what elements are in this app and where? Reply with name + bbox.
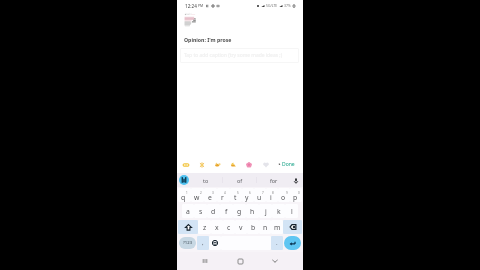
button[interactable]: Hide keyboard <box>268 254 282 268</box>
staticText: 1 <box>186 191 188 195</box>
button[interactable]: a <box>182 204 194 218</box>
button[interactable]: Gif <box>213 156 223 173</box>
staticText: l <box>291 207 293 216</box>
staticText: c <box>227 223 231 232</box>
button[interactable]: o <box>278 188 290 202</box>
button[interactable]: Sticker <box>181 156 191 173</box>
staticText: m <box>274 223 281 232</box>
staticText: k <box>277 207 281 216</box>
button[interactable]: q <box>178 188 191 202</box>
staticText: 12:24 <box>185 3 197 9</box>
button[interactable]: Emoji <box>228 156 238 173</box>
staticText: s <box>199 207 203 216</box>
staticText: z <box>203 223 207 232</box>
button[interactable]: h <box>246 204 259 218</box>
staticText: b <box>251 223 256 232</box>
button[interactable]: Recents <box>198 254 212 268</box>
button[interactable]: t <box>230 188 242 202</box>
staticText: , <box>202 239 204 247</box>
staticText: a <box>186 207 190 216</box>
button[interactable]: d <box>207 204 220 218</box>
button[interactable]: r <box>217 188 230 202</box>
staticText: j <box>265 207 267 216</box>
staticText: 37% <box>284 3 291 8</box>
staticText: 8 <box>272 191 274 195</box>
staticText: to <box>203 177 209 184</box>
button[interactable]: w <box>191 188 204 202</box>
button[interactable]: y <box>242 188 254 202</box>
button[interactable]: Shift <box>178 220 198 234</box>
staticText: 4 <box>224 191 226 195</box>
staticText: x <box>215 223 219 232</box>
staticText: 2 <box>200 191 202 195</box>
staticText: d <box>211 207 216 216</box>
button[interactable]: m <box>271 220 283 234</box>
button[interactable]: Voice input <box>290 175 301 186</box>
button[interactable]: i <box>266 188 278 202</box>
button[interactable]: Enter <box>284 236 301 250</box>
staticText: Done <box>282 161 295 168</box>
button[interactable]: Home <box>233 254 247 268</box>
staticText: PM <box>198 3 204 8</box>
staticText: ?123 <box>183 240 193 246</box>
staticText: Tap to add caption (try some made ideas … <box>184 52 283 59</box>
staticText: q <box>181 193 186 202</box>
button[interactable]: b <box>247 220 259 234</box>
staticText: 6 <box>249 191 251 195</box>
button[interactable]: Comma <box>197 236 209 250</box>
staticText: for <box>270 177 278 184</box>
button[interactable]: Backspace <box>283 220 302 234</box>
button[interactable]: l <box>285 204 298 218</box>
staticText: o <box>281 193 286 202</box>
button[interactable]: ?123 <box>179 237 196 249</box>
button[interactable]: Tap to add caption (try some made ideas … <box>180 48 299 63</box>
button[interactable]: v <box>235 220 247 234</box>
staticText: y <box>245 193 249 202</box>
staticText: 5 <box>237 191 239 195</box>
button[interactable]: Period <box>271 236 283 250</box>
staticText: t <box>234 193 237 202</box>
staticText: p <box>293 193 298 202</box>
button[interactable]: of <box>223 173 256 187</box>
staticText: e <box>208 193 212 202</box>
button[interactable]: k <box>272 204 285 218</box>
staticText: u <box>257 193 262 202</box>
staticText: . <box>276 239 278 247</box>
staticText: f <box>225 207 228 216</box>
staticText: r <box>221 193 224 202</box>
staticText: n <box>263 223 268 232</box>
button[interactable]: Flower <box>244 156 254 173</box>
staticText: 9 <box>286 191 288 195</box>
staticText: 5G/LTE <box>266 3 278 8</box>
button[interactable]: Emoji <box>209 236 221 250</box>
button[interactable]: z <box>198 220 211 234</box>
button[interactable]: Heart <box>261 156 271 173</box>
staticText: of <box>237 177 243 184</box>
staticText: i <box>270 193 272 202</box>
staticText: v <box>239 223 243 232</box>
staticText: Opinion: I'm prose <box>184 36 232 43</box>
button[interactable]: to <box>189 173 222 187</box>
button[interactable]: x <box>211 220 223 234</box>
button[interactable]: j <box>259 204 272 218</box>
staticText: 0 <box>298 191 300 195</box>
button[interactable]: p <box>290 188 302 202</box>
staticText: 3 <box>212 191 214 195</box>
button[interactable]: g <box>233 204 246 218</box>
button[interactable]: s <box>194 204 207 218</box>
button[interactable]: for <box>257 173 290 187</box>
staticText: h <box>250 207 255 216</box>
button[interactable]: Done <box>278 156 295 173</box>
button[interactable]: Effects <box>197 156 207 173</box>
button[interactable]: e <box>204 188 217 202</box>
button[interactable]: Keyboard settings <box>179 175 189 185</box>
staticText: g <box>237 207 242 216</box>
button[interactable]: n <box>259 220 271 234</box>
staticText: 7 <box>262 191 264 195</box>
staticText: w <box>194 193 200 202</box>
button[interactable]: f <box>220 204 233 218</box>
button[interactable]: c <box>223 220 235 234</box>
button[interactable]: u <box>254 188 266 202</box>
